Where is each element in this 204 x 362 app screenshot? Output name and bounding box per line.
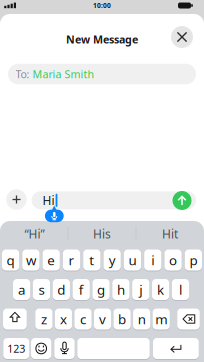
button[interactable]: x xyxy=(55,308,72,330)
button[interactable]: m xyxy=(153,308,170,330)
staticText: s xyxy=(38,281,44,298)
button[interactable]: u xyxy=(124,249,141,271)
staticText: q xyxy=(7,251,15,269)
button[interactable]: w xyxy=(22,249,39,271)
button[interactable]: q xyxy=(2,249,19,271)
button[interactable] xyxy=(6,189,27,210)
button[interactable] xyxy=(153,337,199,359)
staticText: His xyxy=(93,226,111,242)
staticText: b xyxy=(118,310,126,328)
button[interactable]: h xyxy=(112,278,129,300)
staticText: Maria Smith xyxy=(32,67,94,81)
staticText: Hi xyxy=(43,192,55,208)
button[interactable] xyxy=(3,308,27,330)
button[interactable] xyxy=(31,337,51,359)
button[interactable]: “Hi” xyxy=(2,223,66,245)
button[interactable] xyxy=(172,191,191,210)
button[interactable] xyxy=(171,26,193,48)
staticText: t xyxy=(89,251,94,269)
button[interactable]: His xyxy=(70,223,134,245)
staticText: y xyxy=(109,251,116,269)
button[interactable] xyxy=(177,308,200,330)
button[interactable]: r xyxy=(63,249,80,271)
staticText: i xyxy=(151,251,154,269)
button[interactable]: z xyxy=(35,308,52,330)
staticText: Hit xyxy=(162,226,178,242)
staticText: o xyxy=(169,251,177,269)
button[interactable]: n xyxy=(133,308,150,330)
button[interactable]: i xyxy=(144,249,161,271)
staticText: h xyxy=(117,281,125,298)
staticText: d xyxy=(57,281,65,298)
button[interactable]: k xyxy=(152,278,169,300)
staticText: e xyxy=(47,251,55,269)
button[interactable]: y xyxy=(103,249,121,271)
button[interactable]: Hit xyxy=(138,223,202,245)
button[interactable] xyxy=(54,337,75,359)
button[interactable]: o xyxy=(164,249,182,271)
staticText: u xyxy=(128,251,136,269)
button[interactable] xyxy=(77,337,150,359)
button[interactable]: To: xyxy=(8,64,196,84)
button[interactable]: f xyxy=(73,278,90,300)
button[interactable]: l xyxy=(172,278,189,300)
staticText: m xyxy=(155,310,167,328)
staticText: 10:00 xyxy=(93,1,111,10)
staticText: f xyxy=(79,281,84,298)
button[interactable]: v xyxy=(94,308,111,330)
button[interactable]: t xyxy=(83,249,100,271)
staticText: p xyxy=(189,251,197,269)
button[interactable]: Hi xyxy=(32,191,196,209)
button[interactable] xyxy=(45,210,64,222)
staticText: New Message xyxy=(66,32,138,46)
button[interactable]: c xyxy=(74,308,92,330)
staticText: x xyxy=(60,310,67,328)
staticText: 123 xyxy=(7,341,25,356)
staticText xyxy=(110,333,116,362)
staticText: g xyxy=(97,281,105,298)
button[interactable]: s xyxy=(33,278,50,300)
button[interactable]: d xyxy=(53,278,70,300)
staticText: w xyxy=(26,251,36,269)
staticText: l xyxy=(179,281,182,298)
button[interactable]: p xyxy=(185,249,202,271)
staticText: r xyxy=(68,251,74,269)
staticText: c xyxy=(80,310,86,328)
staticText: z xyxy=(41,310,47,328)
staticText: j xyxy=(139,281,142,298)
staticText: n xyxy=(138,310,146,328)
staticText: v xyxy=(99,310,106,328)
staticText: a xyxy=(18,281,25,298)
button[interactable]: j xyxy=(132,278,149,300)
staticText: “Hi” xyxy=(24,226,44,242)
button[interactable]: g xyxy=(92,278,110,300)
button[interactable]: 123 xyxy=(3,337,29,359)
button[interactable]: e xyxy=(43,249,60,271)
staticText: k xyxy=(157,281,164,298)
staticText: To: xyxy=(15,67,29,81)
button[interactable]: b xyxy=(113,308,131,330)
button[interactable]: a xyxy=(13,278,30,300)
